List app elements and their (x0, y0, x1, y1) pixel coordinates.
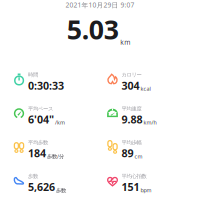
staticText: 時間 (28, 71, 38, 78)
staticText: 平均速度 (121, 105, 141, 112)
staticText: 184 (28, 146, 46, 160)
staticText: 2021年10月29日 9:07 (65, 1, 134, 9)
staticText: 歩数 (56, 187, 66, 194)
staticText: 0:30:33 (28, 78, 64, 93)
staticText: 平均心拍数 (121, 173, 146, 179)
staticText: 歩数/分 (47, 153, 64, 160)
staticText: 平均歩数 (28, 139, 48, 146)
staticText: 6'04" (28, 112, 54, 126)
staticText: 平均ペース (28, 105, 53, 112)
staticText: 9.88 (121, 112, 142, 126)
staticText: kcal (140, 85, 150, 92)
staticText: 151 (121, 180, 139, 194)
staticText: 5.03 (67, 11, 119, 47)
staticText: cm (134, 153, 142, 160)
staticText: カロリー (121, 71, 141, 78)
staticText: 304 (121, 78, 139, 93)
staticText: /km (55, 119, 65, 126)
staticText: 歩数 (28, 173, 38, 179)
staticText: km/h (143, 119, 156, 126)
staticText: 89 (121, 146, 133, 160)
staticText: km (120, 38, 130, 47)
staticText: 平均歩幅 (121, 139, 141, 146)
staticText: bpm (140, 187, 151, 194)
staticText: 5,626 (28, 180, 55, 194)
